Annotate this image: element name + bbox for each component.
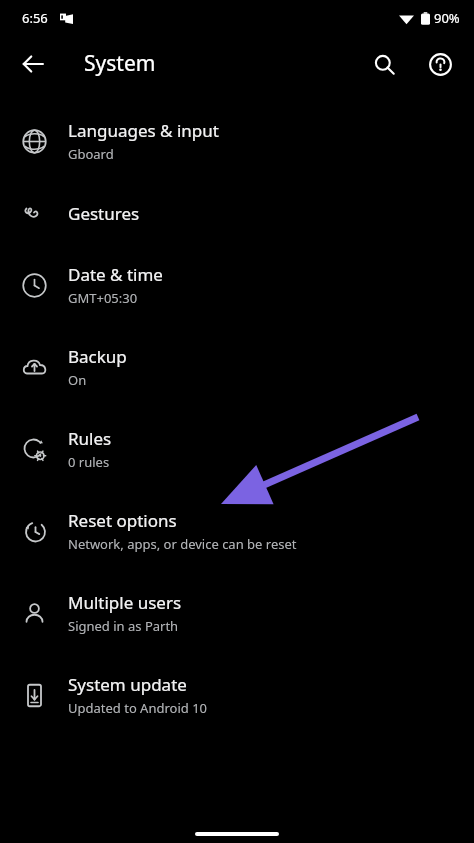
staticText: Network, apps, or device can be reset	[68, 535, 297, 553]
staticText: Rules	[68, 427, 112, 450]
staticText: 90%	[434, 9, 460, 27]
staticText: Backup	[68, 345, 127, 368]
staticText: Reset options	[68, 509, 177, 532]
button[interactable]: Gestures	[0, 182, 474, 244]
staticText: GMT+05:30	[68, 289, 138, 307]
button[interactable]: System update	[0, 654, 474, 736]
staticText: Date & time	[68, 263, 163, 286]
staticText: 0 rules	[68, 453, 110, 471]
staticText: Updated to Android 10	[68, 699, 208, 717]
staticText: 6:56	[22, 9, 48, 27]
button[interactable]: Search	[362, 42, 406, 86]
button[interactable]: Help	[418, 42, 462, 86]
button[interactable]: Languages & input	[0, 100, 474, 182]
staticText: On	[68, 371, 87, 389]
button[interactable]: Back	[11, 42, 55, 86]
button[interactable]: Date & time	[0, 244, 474, 326]
staticText: System	[84, 49, 156, 78]
staticText: Gboard	[68, 145, 114, 163]
staticText: System update	[68, 673, 187, 696]
button[interactable]: Backup	[0, 326, 474, 408]
button[interactable]: Reset options	[0, 490, 474, 572]
staticText: Multiple users	[68, 591, 182, 614]
staticText: Gestures	[68, 202, 140, 225]
staticText: Signed in as Parth	[68, 617, 179, 635]
staticText: Languages & input	[68, 119, 219, 142]
button[interactable]: Multiple users	[0, 572, 474, 654]
button[interactable]: Rules	[0, 408, 474, 490]
